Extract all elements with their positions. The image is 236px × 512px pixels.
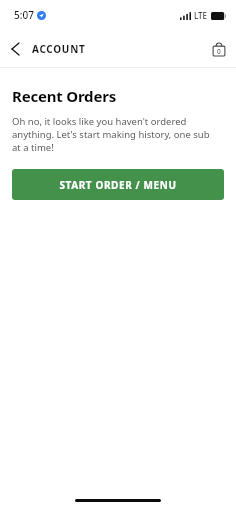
staticText: 0 (217, 47, 221, 56)
staticText: ACCOUNT (32, 42, 86, 56)
staticText: Recent Orders (12, 86, 116, 106)
button[interactable]: START ORDER / MENU (12, 169, 224, 200)
staticText: LTE (194, 10, 208, 21)
button[interactable]: Back (0, 37, 25, 61)
staticText: Oh no, it looks like you haven't ordered… (12, 115, 218, 154)
staticText: 5:07 (14, 8, 34, 22)
staticText: START ORDER / MENU (59, 178, 177, 192)
button[interactable]: Bag, 0 items (202, 35, 236, 63)
